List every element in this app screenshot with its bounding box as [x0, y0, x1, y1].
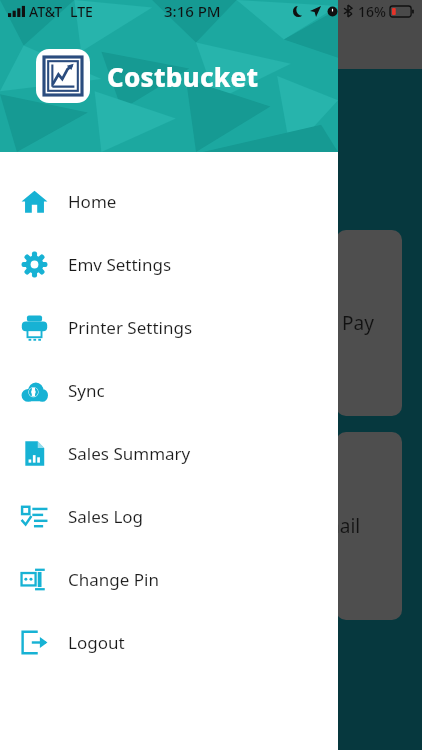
button[interactable]: Costbucket logo — [36, 49, 90, 103]
button[interactable]: Pay — [336, 230, 402, 416]
staticText: 3:16 PM — [164, 1, 221, 21]
button[interactable]: Sync — [0, 359, 338, 422]
staticText: Sync — [68, 379, 105, 402]
staticText: Printer Settings — [68, 316, 193, 339]
staticText: Pay — [342, 310, 374, 336]
staticText: Sales Log — [68, 505, 144, 528]
button[interactable]: Emv Settings — [0, 233, 338, 296]
button[interactable]: Sales Summary — [0, 422, 338, 485]
staticText: Logout — [68, 631, 125, 654]
staticText: Costbucket — [107, 59, 259, 94]
staticText: Home — [68, 190, 117, 213]
button[interactable]: Logout — [0, 611, 338, 674]
staticText: nail — [336, 513, 361, 539]
button[interactable]: Sales Log — [0, 485, 338, 548]
button[interactable]: Printer Settings — [0, 296, 338, 359]
staticText: 16% — [358, 2, 386, 21]
button[interactable]: Change Pin — [0, 548, 338, 611]
button[interactable]: nail — [336, 432, 402, 620]
staticText: Sales Summary — [68, 442, 191, 465]
button[interactable]: Home — [0, 170, 338, 233]
staticText: Change Pin — [68, 568, 159, 591]
staticText: AT&T — [29, 2, 63, 21]
staticText: LTE — [70, 2, 93, 21]
staticText: Emv Settings — [68, 253, 172, 276]
